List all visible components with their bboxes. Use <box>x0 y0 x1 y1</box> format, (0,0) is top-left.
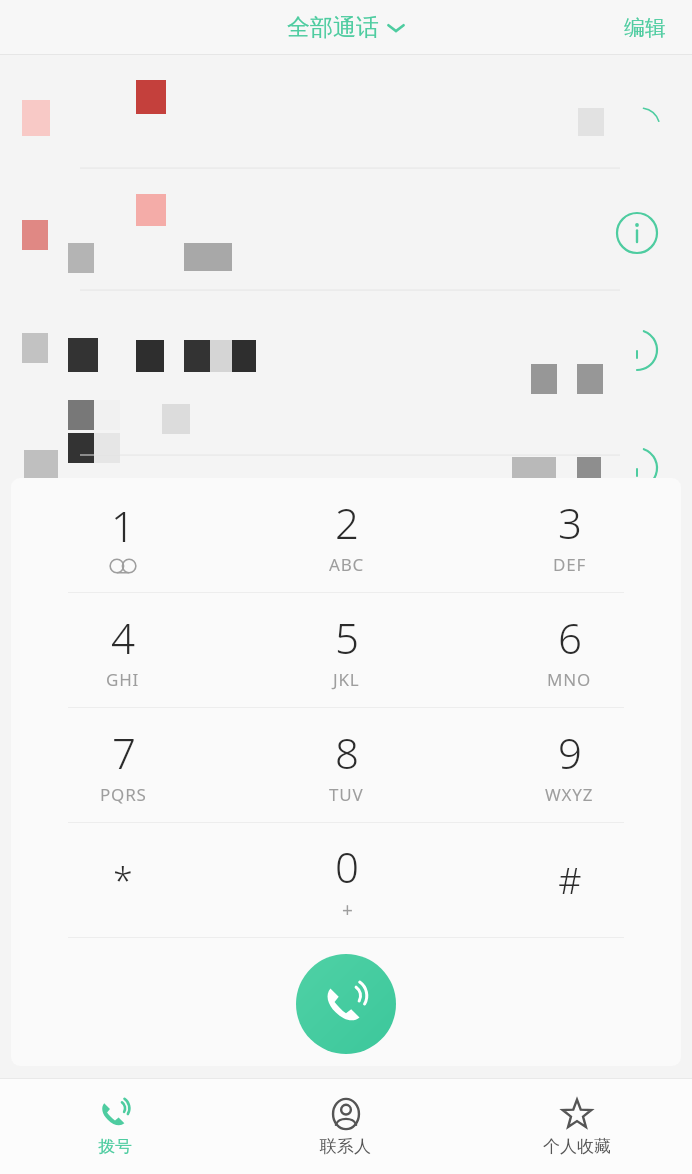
button[interactable]: 拨号 <box>0 1079 230 1174</box>
staticText: PQRS <box>100 783 147 806</box>
button[interactable]: * <box>11 823 235 937</box>
staticText: 8 <box>335 724 359 781</box>
staticText: 3 <box>558 494 582 551</box>
staticText: TUV <box>329 783 364 806</box>
button[interactable]: 7 <box>11 708 235 822</box>
button[interactable]: 9 <box>458 708 681 822</box>
staticText: 6 <box>558 609 582 666</box>
button[interactable]: 联系人 <box>230 1079 461 1174</box>
staticText: 联系人 <box>320 1136 371 1157</box>
button[interactable]: 全部通话 <box>287 13 406 42</box>
button[interactable]: 编辑 <box>624 15 666 41</box>
button[interactable]: 3 <box>458 478 681 592</box>
staticText: 拨号 <box>98 1136 132 1157</box>
button[interactable]: 拨打电话 <box>296 954 396 1054</box>
button[interactable]: 2 <box>235 478 458 592</box>
staticText: MNO <box>547 668 592 691</box>
button[interactable]: 4 <box>11 593 235 707</box>
staticText: GHI <box>106 668 140 691</box>
button[interactable]: 5 <box>235 593 458 707</box>
staticText: + <box>342 897 353 923</box>
staticText: 0 <box>335 838 359 895</box>
staticText: 2 <box>335 494 359 551</box>
staticText: 5 <box>335 609 359 666</box>
staticText: JKL <box>333 668 360 691</box>
staticText: DEF <box>553 553 587 576</box>
staticText: 7 <box>112 724 136 781</box>
button[interactable]: 1 <box>11 478 235 592</box>
staticText: ABC <box>329 553 365 576</box>
button[interactable]: 6 <box>458 593 681 707</box>
staticText: 个人收藏 <box>543 1136 611 1157</box>
staticText: 4 <box>111 609 135 666</box>
staticText: 1 <box>111 497 135 554</box>
staticText: * <box>113 856 133 905</box>
button[interactable]: # <box>458 823 681 937</box>
button[interactable]: 8 <box>235 708 458 822</box>
staticText: # <box>558 856 582 905</box>
staticText: 9 <box>558 724 582 781</box>
staticText: WXYZ <box>545 783 594 806</box>
button[interactable]: 0 <box>235 823 458 937</box>
staticText: 全部通话 <box>287 13 379 42</box>
staticText: 编辑 <box>624 15 666 41</box>
button[interactable]: 个人收藏 <box>461 1079 692 1174</box>
